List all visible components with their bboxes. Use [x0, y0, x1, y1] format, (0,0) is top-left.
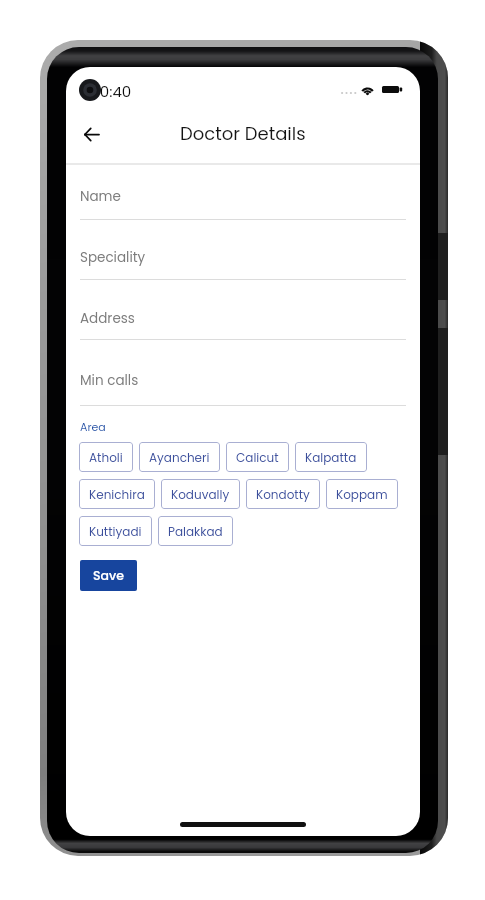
staticText: Kondotty: [256, 486, 310, 503]
staticText: Koduvally: [171, 486, 230, 503]
button[interactable]: Kalpatta: [295, 442, 367, 472]
staticText: Kalpatta: [305, 449, 357, 466]
staticText: Ayancheri: [149, 449, 210, 466]
button[interactable]: Ayancheri: [139, 442, 220, 472]
staticText: Atholi: [89, 449, 123, 466]
staticText: Speciality: [80, 248, 146, 267]
staticText: Area: [80, 419, 106, 434]
staticText: Name: [80, 187, 121, 206]
button[interactable]: Back: [72, 115, 110, 153]
button[interactable]: Palakkad: [158, 516, 233, 546]
button[interactable]: Kondotty: [246, 479, 320, 509]
button[interactable]: Kuttiyadi: [79, 516, 152, 546]
staticText: Koppam: [336, 486, 388, 503]
staticText: Calicut: [236, 449, 279, 466]
button[interactable]: Kenichira: [79, 479, 155, 509]
staticText: Min calls: [80, 371, 139, 390]
staticText: Doctor Details: [180, 121, 306, 146]
button[interactable]: Atholi: [79, 442, 133, 472]
button[interactable]: Save: [80, 560, 137, 591]
button[interactable]: Koduvally: [161, 479, 240, 509]
staticText: Save: [93, 567, 124, 584]
staticText: Kuttiyadi: [89, 523, 142, 540]
button[interactable]: Koppam: [326, 479, 398, 509]
staticText: Kenichira: [89, 486, 145, 503]
staticText: 10:40: [95, 81, 132, 102]
staticText: Address: [80, 309, 135, 328]
button[interactable]: Calicut: [226, 442, 289, 472]
staticText: Palakkad: [168, 523, 223, 540]
